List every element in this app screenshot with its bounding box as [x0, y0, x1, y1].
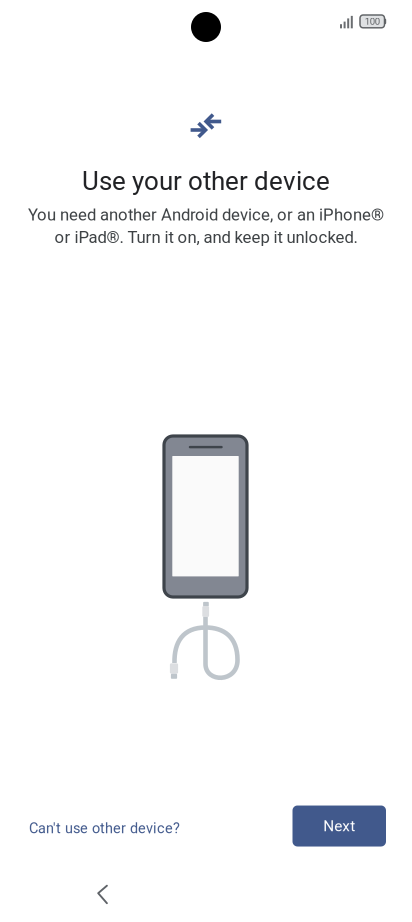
button[interactable]: Can't use other device? [25, 812, 184, 845]
staticText: You need another Android device, or an i… [28, 205, 384, 224]
button[interactable]: Back [90, 880, 124, 914]
staticText: Can't use other device? [29, 820, 180, 837]
staticText: or iPad®. Turn it on, and keep it unlock… [54, 227, 357, 247]
staticText: Next [323, 817, 355, 835]
button[interactable]: Next [292, 805, 386, 846]
staticText: 100 [365, 16, 380, 27]
staticText: Use your other device [82, 166, 330, 196]
